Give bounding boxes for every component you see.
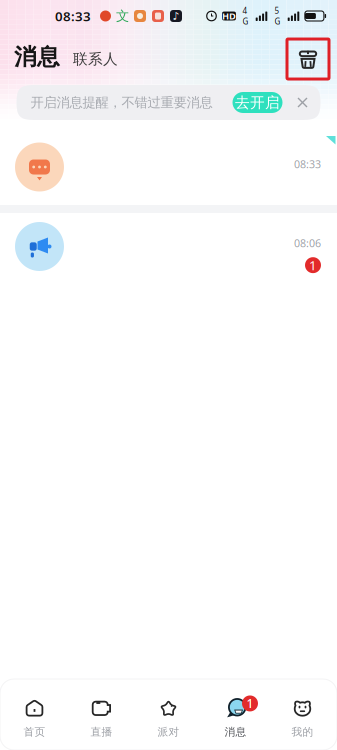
staticText: 08:06 <box>294 236 321 250</box>
staticText: 4G <box>242 5 248 27</box>
staticText: ♪ <box>172 10 179 22</box>
button[interactable]: 08:06 <box>0 213 337 280</box>
button[interactable]: 1 <box>202 696 269 738</box>
button[interactable]: 关闭 <box>294 94 310 110</box>
button[interactable]: 派对 <box>135 696 202 738</box>
staticText: 消息 <box>14 43 60 71</box>
staticText: 消息 <box>224 725 246 738</box>
staticText: 我的 <box>291 725 313 738</box>
button[interactable]: 清理消息 <box>290 32 326 90</box>
staticText: 联系人 <box>73 50 118 68</box>
staticText: 去开启 <box>235 93 280 111</box>
staticText: 5G <box>274 5 280 27</box>
staticText: 08:33 <box>55 7 91 25</box>
staticText: HD <box>222 10 236 22</box>
staticText: 08:33 <box>294 157 321 171</box>
staticText: 首页 <box>23 725 45 738</box>
staticText: 文 <box>116 8 129 24</box>
staticText: 1 <box>309 256 317 274</box>
button[interactable]: 去开启 <box>232 92 282 113</box>
staticText: 1 <box>246 695 253 711</box>
button[interactable]: 联系人 <box>73 32 118 98</box>
staticText: 开启消息提醒，不错过重要消息 <box>30 94 212 111</box>
staticText: 派对 <box>157 725 179 738</box>
staticText: 直播 <box>90 725 112 738</box>
button[interactable]: 08:33 <box>0 129 337 205</box>
button[interactable]: 直播 <box>68 696 135 738</box>
button[interactable]: 首页 <box>1 696 68 738</box>
button[interactable]: 我的 <box>269 696 336 738</box>
